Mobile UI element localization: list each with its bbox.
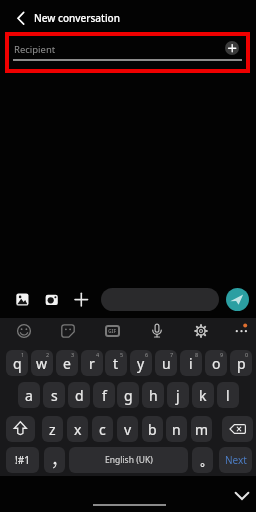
staticText: b [148, 420, 157, 439]
button[interactable]: r [81, 350, 103, 376]
button[interactable]: h [142, 382, 164, 408]
staticText: GIF [108, 328, 117, 335]
staticText: u [162, 354, 171, 373]
button[interactable]: b [142, 416, 163, 442]
button[interactable] [101, 288, 219, 311]
button[interactable] [56, 319, 80, 343]
button[interactable]: i [180, 350, 202, 376]
button[interactable] [69, 287, 94, 312]
staticText: x [74, 420, 82, 439]
button[interactable]: f [93, 382, 115, 408]
button[interactable] [10, 287, 35, 312]
button[interactable]: d [68, 382, 90, 408]
button[interactable]: n [166, 416, 187, 442]
staticText: 8 [195, 351, 199, 358]
staticText: r [89, 354, 95, 373]
staticText: q [13, 354, 22, 373]
button[interactable] [232, 486, 252, 504]
button[interactable]: u [155, 350, 177, 376]
staticText: k [199, 386, 207, 405]
button[interactable]: o [205, 350, 227, 376]
button[interactable]: k [192, 382, 214, 408]
staticText: o [212, 354, 221, 373]
button[interactable]: p [230, 350, 252, 376]
button[interactable]: English (UK) [69, 447, 188, 473]
staticText: v [124, 420, 132, 439]
button[interactable]: s [43, 382, 65, 408]
button[interactable] [189, 319, 213, 343]
button[interactable]: Recipient [5, 32, 250, 73]
button[interactable] [6, 416, 35, 442]
button[interactable]: !#1 [6, 447, 39, 473]
staticText: a [25, 386, 33, 405]
button[interactable] [192, 447, 213, 473]
staticText: New conversation [34, 11, 120, 25]
button[interactable]: q [6, 350, 28, 376]
staticText: n [172, 420, 181, 439]
staticText: s [51, 386, 58, 405]
button[interactable]: y [130, 350, 152, 376]
staticText: j [176, 386, 180, 405]
button[interactable]: j [167, 382, 189, 408]
button[interactable] [229, 319, 253, 343]
staticText: English (UK) [105, 454, 153, 466]
staticText: 3 [71, 351, 75, 358]
button[interactable]: m [191, 416, 212, 442]
staticText: t [113, 354, 119, 373]
button[interactable]: v [117, 416, 138, 442]
staticText: 7 [170, 351, 174, 358]
staticText: 9 [220, 351, 224, 358]
staticText: g [124, 386, 133, 405]
button[interactable]: e [56, 350, 78, 376]
staticText: c [99, 420, 106, 439]
button[interactable] [44, 447, 65, 473]
staticText: Next [225, 453, 247, 467]
button[interactable]: Next [219, 447, 252, 473]
staticText: i [189, 354, 193, 373]
button[interactable]: w [31, 350, 53, 376]
button[interactable]: GIF [100, 319, 124, 343]
button[interactable]: z [42, 416, 63, 442]
staticText: 5 [120, 351, 124, 358]
button[interactable]: c [92, 416, 113, 442]
button[interactable] [39, 287, 64, 312]
button[interactable] [226, 288, 249, 311]
button[interactable] [9, 6, 33, 30]
button[interactable]: g [117, 382, 139, 408]
staticText: 4 [96, 351, 100, 358]
staticText: Recipient [14, 43, 56, 56]
button[interactable]: l [217, 382, 239, 408]
staticText: 0 [245, 351, 249, 358]
staticText: f [102, 386, 107, 405]
staticText: 1 [21, 351, 25, 358]
button[interactable] [222, 416, 253, 442]
staticText: d [75, 386, 84, 405]
button[interactable]: t [105, 350, 127, 376]
staticText: z [49, 420, 56, 439]
button[interactable]: x [67, 416, 88, 442]
button[interactable] [12, 319, 36, 343]
staticText: e [63, 354, 71, 373]
staticText: 2 [46, 351, 50, 358]
staticText: p [237, 354, 246, 373]
button[interactable] [225, 41, 239, 55]
staticText: y [137, 354, 145, 373]
staticText: 6 [145, 351, 149, 358]
staticText: !#1 [15, 453, 30, 467]
staticText: m [195, 420, 209, 439]
staticText: l [226, 386, 230, 405]
staticText: h [149, 386, 158, 405]
button[interactable]: a [18, 382, 40, 408]
staticText: w [36, 354, 48, 373]
button[interactable] [145, 319, 169, 343]
